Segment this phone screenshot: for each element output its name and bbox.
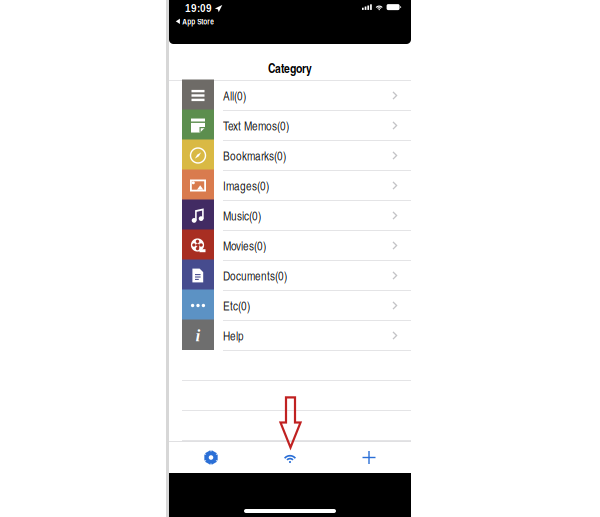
button[interactable]: All(0) — [169, 81, 411, 110]
button[interactable]: Movies(0) — [169, 231, 411, 260]
staticText: 19:09 — [185, 3, 212, 14]
button[interactable]: Documents(0) — [169, 261, 411, 290]
staticText: All(0) — [223, 87, 246, 104]
staticText: Help — [223, 327, 244, 344]
button[interactable]: Wi-Fi transfer — [262, 442, 318, 473]
button[interactable]: Music(0) — [169, 201, 411, 230]
button[interactable]: Settings — [183, 442, 239, 473]
button[interactable]: Add — [341, 442, 397, 473]
button[interactable]: Images(0) — [169, 171, 411, 200]
staticText: Music(0) — [223, 207, 261, 224]
staticText: Category — [268, 59, 312, 77]
staticText: Bookmarks(0) — [223, 147, 286, 164]
button[interactable]: Etc(0) — [169, 291, 411, 320]
button[interactable]: Text Memos(0) — [169, 111, 411, 140]
staticText: Movies(0) — [223, 237, 266, 254]
staticText: Text Memos(0) — [223, 117, 289, 134]
button[interactable]: i — [169, 321, 411, 350]
button[interactable]: Bookmarks(0) — [169, 141, 411, 170]
staticText: Etc(0) — [223, 297, 250, 314]
staticText: Documents(0) — [223, 267, 287, 284]
staticText: App Store — [182, 16, 214, 27]
staticText: i — [195, 326, 200, 345]
staticText: Images(0) — [223, 177, 269, 194]
